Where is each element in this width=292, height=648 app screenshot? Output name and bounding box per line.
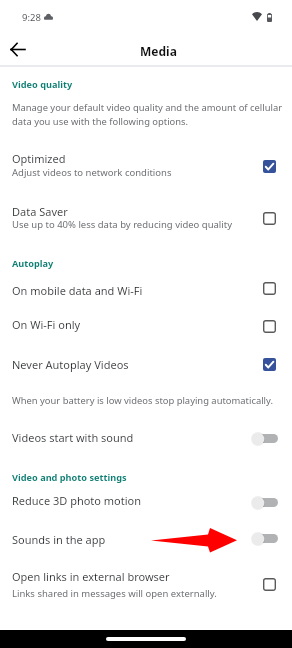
staticText: When your battery is low videos stop pla… xyxy=(12,394,273,407)
staticText: Use up to 40% less data by reducing vide… xyxy=(12,218,233,231)
button[interactable]: Data Saver xyxy=(0,195,292,233)
staticText: Video quality xyxy=(12,78,73,91)
button[interactable]: Toggle xyxy=(251,531,278,546)
staticText: Open links in external browser xyxy=(12,569,170,584)
staticText: On Wi-Fi only xyxy=(12,317,81,332)
staticText: Videos start with sound xyxy=(12,430,134,445)
staticText: Links shared in messages will open exter… xyxy=(12,587,217,600)
button[interactable]: Optimized xyxy=(0,142,292,180)
staticText: data you use with the following options. xyxy=(12,115,189,128)
button[interactable]: Back xyxy=(0,30,35,65)
staticText: Data Saver xyxy=(12,204,68,219)
staticText: Autoplay xyxy=(12,257,54,270)
staticText: 9:28 xyxy=(22,11,41,24)
button[interactable]: Toggle xyxy=(251,431,278,446)
staticText: Reduce 3D photo motion xyxy=(12,493,142,508)
button[interactable]: Never Autoplay Videos xyxy=(0,346,292,380)
button[interactable]: Open links in external browser xyxy=(0,561,292,599)
staticText: On mobile data and Wi-Fi xyxy=(12,283,143,298)
button[interactable]: Sounds in the app xyxy=(0,520,292,554)
staticText: Video and photo settings xyxy=(12,471,127,484)
staticText: Sounds in the app xyxy=(12,532,106,547)
button[interactable]: Videos start with sound xyxy=(0,419,292,453)
button[interactable]: Reduce 3D photo motion xyxy=(0,482,292,516)
button[interactable]: On Wi-Fi only xyxy=(0,306,292,340)
button[interactable]: On mobile data and Wi-Fi xyxy=(0,271,292,305)
staticText: Media xyxy=(140,43,177,59)
staticText: Adjust videos to network conditions xyxy=(12,166,172,179)
staticText: Optimized xyxy=(12,151,66,166)
staticText: Manage your default video quality and th… xyxy=(12,101,283,114)
button[interactable]: Toggle xyxy=(251,495,278,510)
staticText: Never Autoplay Videos xyxy=(12,357,129,372)
